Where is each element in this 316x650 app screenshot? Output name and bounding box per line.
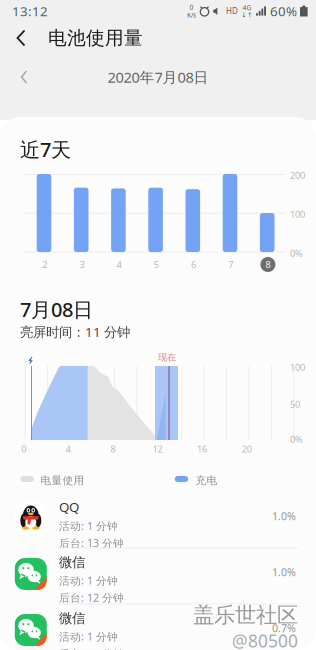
staticText: 后台: 12 分钟: [59, 590, 124, 605]
staticText: 0: [21, 443, 26, 455]
staticText: 8: [110, 443, 115, 455]
staticText: 20: [242, 443, 252, 455]
staticText: @80500: [232, 629, 298, 650]
staticText: 0%: [290, 247, 303, 259]
staticText: 现在: [158, 352, 176, 363]
button[interactable]: 微信: [0, 605, 316, 650]
staticText: 后台: 13 分钟: [59, 536, 124, 550]
button[interactable]: 电池使用量: [38, 26, 143, 49]
staticText: QQ: [59, 498, 79, 516]
staticText: K/s: [187, 10, 196, 19]
staticText: 电池使用量: [48, 26, 143, 49]
staticText: 5: [154, 258, 159, 271]
button[interactable]: QQ: [0, 493, 316, 549]
staticText: 微信: [59, 554, 85, 570]
staticText: 0: [189, 3, 193, 11]
staticText: 2: [42, 258, 47, 271]
staticText: 电量使用: [40, 474, 84, 487]
staticText: ↓↑: [241, 11, 253, 19]
staticText: 活动: 1 分钟: [59, 573, 118, 588]
staticText: 亮屏时间：11 分钟: [20, 323, 130, 341]
staticText: 盖乐世社区: [193, 602, 298, 628]
staticText: 微信: [59, 610, 85, 626]
staticText: 200: [290, 169, 305, 181]
staticText: 0.7%: [272, 621, 296, 635]
button[interactable]: Back: [12, 26, 38, 50]
staticText: 100: [290, 208, 305, 220]
staticText: 4: [66, 443, 71, 455]
staticText: 4G: [242, 3, 251, 12]
staticText: 4: [117, 258, 122, 271]
staticText: 2020年7月08日: [107, 67, 208, 87]
staticText: 3: [79, 258, 84, 271]
staticText: 1.0%: [272, 509, 296, 523]
button[interactable]: 微信: [0, 549, 316, 605]
staticText: 100: [290, 361, 305, 373]
staticText: 0%: [290, 433, 303, 445]
staticText: 近7天: [20, 136, 71, 163]
staticText: 活动: 1 分钟: [59, 519, 118, 533]
staticText: 8: [265, 258, 270, 271]
staticText: 1.0%: [272, 565, 296, 579]
button[interactable]: Previous day: [16, 67, 38, 87]
staticText: 13:12: [12, 2, 48, 20]
staticText: 60%: [270, 2, 297, 20]
staticText: 12: [152, 443, 162, 455]
staticText: HD: [226, 6, 238, 16]
staticText: 16: [197, 443, 207, 455]
staticText: 50: [290, 398, 300, 410]
staticText: 7: [228, 258, 233, 271]
staticText: 充电: [195, 474, 217, 487]
staticText: 后台: 12 分钟: [59, 646, 124, 650]
staticText: 6: [191, 258, 196, 271]
staticText: 7月08日: [20, 296, 93, 323]
staticText: 活动: 1 分钟: [59, 629, 118, 644]
